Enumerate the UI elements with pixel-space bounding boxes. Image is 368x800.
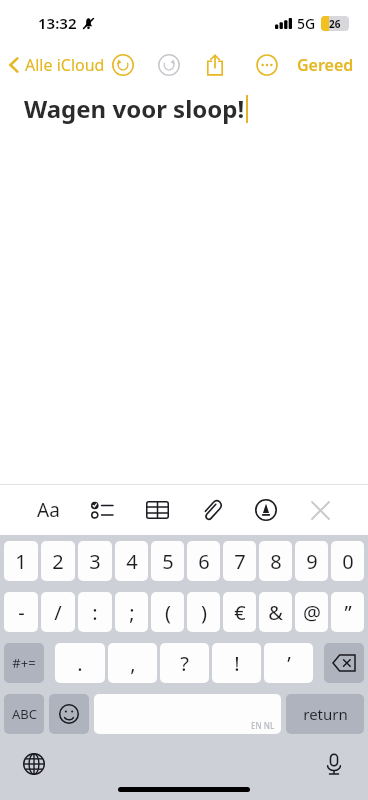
staticText: ! — [234, 650, 240, 677]
button[interactable]: Space — [94, 694, 281, 734]
button[interactable]: Undo — [108, 50, 138, 80]
button[interactable]: , — [108, 643, 157, 683]
button[interactable]: More options — [251, 49, 283, 81]
button[interactable]: Aa — [30, 492, 66, 528]
staticText: ” — [344, 599, 352, 626]
staticText: / — [54, 599, 62, 626]
button[interactable]: Emoji — [49, 694, 89, 734]
button[interactable]: ) — [187, 592, 220, 632]
staticText: 5 — [162, 548, 174, 575]
button[interactable]: return — [286, 694, 364, 734]
button[interactable]: ( — [151, 592, 184, 632]
button[interactable]: Dictate — [316, 746, 352, 782]
staticText: & — [268, 599, 283, 626]
staticText: 9 — [306, 548, 318, 575]
staticText: 1 — [15, 548, 27, 575]
button[interactable]: Change keyboard language — [16, 746, 52, 782]
staticText: 26 — [329, 17, 341, 31]
staticText: ? — [180, 650, 189, 677]
staticText: ( — [165, 599, 171, 626]
staticText: #+= — [12, 654, 36, 672]
button[interactable]: Attach — [193, 492, 229, 528]
button[interactable]: ABC — [4, 694, 44, 734]
staticText: return — [303, 704, 348, 724]
button[interactable]: Close keyboard — [302, 492, 338, 528]
button[interactable]: Checklist — [84, 492, 120, 528]
staticText: 7 — [234, 548, 246, 575]
button[interactable]: . — [55, 643, 105, 683]
staticText: 6 — [198, 548, 210, 575]
button[interactable]: / — [41, 592, 75, 632]
button[interactable]: 3 — [78, 541, 112, 581]
staticText: Alle iCloud — [25, 54, 105, 76]
staticText: , — [130, 650, 136, 677]
staticText: 0 — [342, 548, 354, 575]
staticText: 8 — [270, 548, 282, 575]
button[interactable]: ; — [115, 592, 148, 632]
button[interactable]: Alle iCloud — [8, 54, 105, 76]
button[interactable]: & — [259, 592, 292, 632]
staticText: - — [18, 599, 25, 626]
staticText: ’ — [287, 650, 291, 677]
button[interactable]: : — [78, 592, 112, 632]
button[interactable]: 9 — [295, 541, 328, 581]
button[interactable]: ’ — [264, 643, 313, 683]
staticText: 4 — [126, 548, 138, 575]
button[interactable]: - — [4, 592, 38, 632]
staticText: ; — [129, 599, 135, 626]
staticText: @ — [303, 599, 321, 626]
button[interactable]: 1 — [4, 541, 38, 581]
button[interactable]: @ — [295, 592, 328, 632]
button[interactable]: ? — [160, 643, 209, 683]
button[interactable]: 0 — [331, 541, 364, 581]
staticText: . — [77, 650, 83, 677]
staticText: Aa — [37, 497, 60, 523]
button[interactable]: Gereed — [293, 50, 358, 80]
button[interactable]: 8 — [259, 541, 292, 581]
staticText: : — [92, 599, 98, 626]
button[interactable]: Redo — [154, 50, 184, 80]
staticText: 3 — [89, 548, 101, 575]
staticText: 5G — [297, 14, 316, 33]
staticText: 2 — [52, 548, 64, 575]
button[interactable]: #+= — [4, 643, 44, 683]
staticText: € — [234, 599, 246, 626]
button[interactable]: 5 — [151, 541, 184, 581]
button[interactable]: 2 — [41, 541, 75, 581]
button[interactable]: Share — [199, 49, 231, 81]
button[interactable]: 4 — [115, 541, 148, 581]
button[interactable]: 6 — [187, 541, 220, 581]
button[interactable]: ! — [212, 643, 261, 683]
button[interactable]: Backspace — [324, 643, 364, 683]
staticText: ) — [201, 599, 207, 626]
staticText: Gereed — [297, 54, 354, 76]
staticText: 13:32 — [38, 13, 77, 33]
button[interactable]: € — [223, 592, 256, 632]
button[interactable]: 7 — [223, 541, 256, 581]
staticText: EN NL — [251, 720, 275, 731]
button[interactable]: ” — [331, 592, 364, 632]
button[interactable]: Table — [139, 492, 175, 528]
staticText: Wagen voor sloop! — [24, 92, 245, 125]
button[interactable]: Markup — [248, 492, 284, 528]
staticText: ABC — [12, 705, 37, 723]
